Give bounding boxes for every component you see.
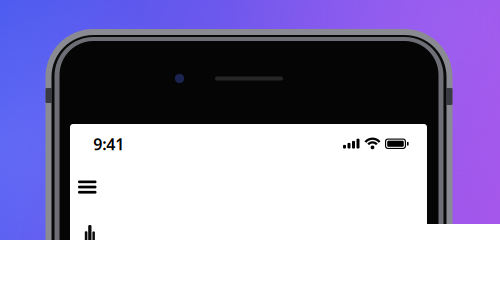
button[interactable]: Menu (0, 0, 500, 300)
button[interactable]: Activity (0, 0, 500, 300)
staticText: 9:41 (93, 133, 124, 155)
